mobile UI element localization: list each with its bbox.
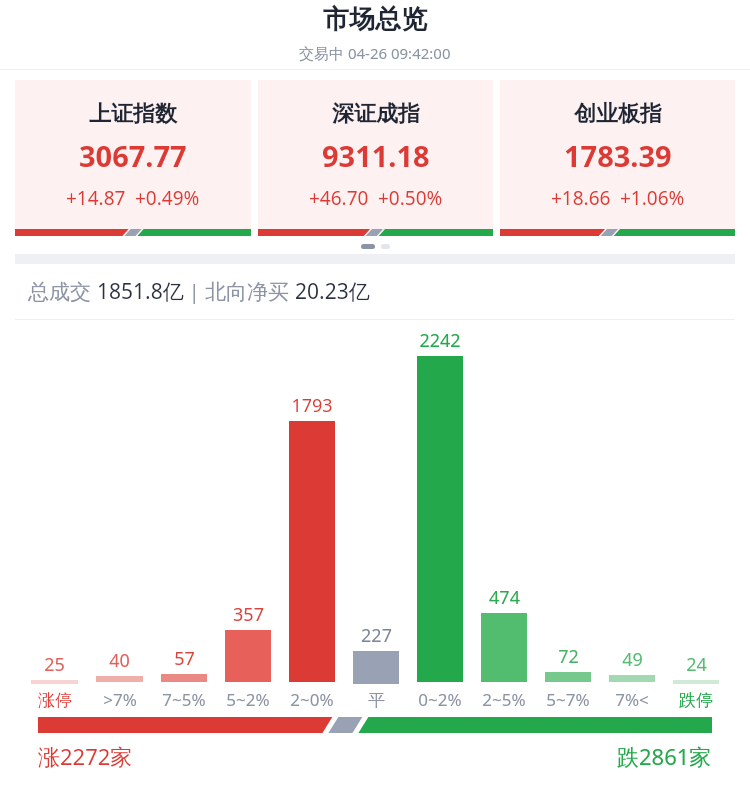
staticText: +14.87: [66, 185, 126, 211]
staticText: 涨停: [38, 690, 72, 711]
staticText: 25: [44, 652, 65, 677]
staticText: 72: [558, 644, 579, 669]
staticText: +0.50%: [378, 185, 443, 211]
button[interactable]: 2242: [408, 328, 472, 713]
staticText: 227: [361, 623, 392, 648]
button[interactable]: 57: [152, 328, 216, 713]
staticText: 49: [622, 647, 643, 672]
staticText: 0~2%: [418, 688, 462, 711]
staticText: 2242: [419, 328, 461, 353]
staticText: 2~5%: [482, 688, 526, 711]
button[interactable]: 总成交: [28, 264, 750, 319]
staticText: 7%<: [615, 688, 649, 711]
staticText: 涨2272家: [38, 741, 133, 771]
staticText: +46.70: [309, 185, 369, 211]
staticText: 市场总览: [323, 3, 427, 36]
button[interactable]: 72: [536, 328, 600, 713]
staticText: 3067.77: [79, 136, 187, 175]
staticText: 357: [233, 602, 264, 627]
staticText: +1.06%: [620, 185, 685, 211]
button[interactable]: 474: [472, 328, 536, 713]
staticText: 40: [109, 648, 130, 673]
staticText: 7~5%: [162, 688, 206, 711]
button[interactable]: 深证成指: [258, 80, 493, 236]
staticText: 1851.8亿: [97, 277, 184, 306]
button[interactable]: 25: [22, 328, 87, 713]
staticText: 9311.18: [322, 136, 430, 175]
staticText: +18.66: [551, 185, 611, 211]
button[interactable]: 40: [87, 328, 152, 713]
staticText: 平: [368, 690, 385, 711]
staticText: 2~0%: [290, 688, 334, 711]
button[interactable]: 24: [664, 328, 728, 713]
staticText: 总成交: [28, 277, 97, 306]
staticText: 474: [489, 585, 520, 610]
staticText: 57: [174, 646, 195, 671]
staticText: 24: [686, 652, 707, 677]
staticText: 1783.39: [564, 136, 672, 175]
button[interactable]: 227: [344, 328, 408, 713]
staticText: 交易中 04-26 09:42:00: [299, 43, 451, 63]
button[interactable]: 创业板指: [500, 80, 735, 236]
staticText: 跌停: [679, 690, 713, 711]
staticText: 1793: [291, 393, 333, 418]
button[interactable]: 上证指数: [15, 80, 251, 236]
button[interactable]: 1793: [280, 328, 344, 713]
button[interactable]: 49: [600, 328, 664, 713]
staticText: 跌2861家: [617, 741, 712, 771]
staticText: 创业板指: [574, 100, 662, 128]
staticText: 5~7%: [546, 688, 590, 711]
staticText: >7%: [103, 688, 137, 711]
button[interactable]: 357: [216, 328, 280, 713]
staticText: +0.49%: [135, 185, 200, 211]
staticText: 深证成指: [332, 100, 420, 128]
staticText: 上证指数: [89, 100, 177, 128]
staticText: 北向净买: [205, 277, 295, 306]
staticText: 20.23亿: [295, 277, 370, 306]
staticText: 5~2%: [226, 688, 270, 711]
staticText: |: [184, 279, 205, 305]
